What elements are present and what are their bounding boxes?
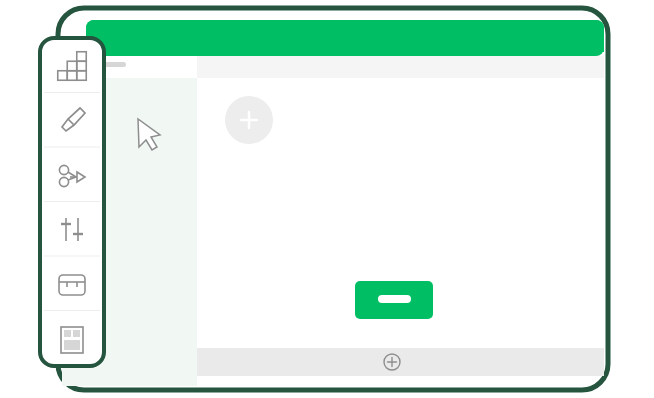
button[interactable]: Charts [40, 42, 102, 95]
button[interactable]: Layout [40, 307, 102, 360]
button[interactable]: Add [225, 96, 273, 144]
button[interactable]: Toolbox [40, 254, 102, 307]
button[interactable]: Add page [378, 348, 406, 376]
button[interactable]: Draw [40, 95, 102, 148]
button[interactable]: Connect [40, 148, 102, 201]
button[interactable]: Adjust [40, 201, 102, 254]
button[interactable]: Primary action [355, 281, 433, 319]
